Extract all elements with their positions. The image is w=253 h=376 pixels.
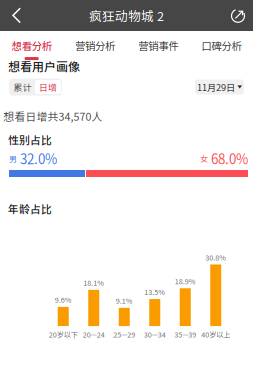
staticText: 68.0% (208, 149, 248, 168)
staticText: 想看分析 (12, 38, 52, 53)
staticText: 口碑分析 (201, 38, 241, 53)
staticText: 30—34 (144, 329, 166, 339)
staticText: 40岁以上 (201, 329, 230, 339)
staticText: 想看用户画像 (8, 57, 80, 75)
staticText: 疯狂动物城 2 (89, 6, 164, 25)
staticText: 18.9% (175, 276, 196, 286)
staticText: 20岁以下 (49, 329, 78, 339)
staticText: 年龄占比 (8, 201, 52, 216)
button[interactable]: 口碑分析 (190, 31, 253, 59)
button[interactable]: Back (6, 5, 28, 26)
staticText: 32.0% (17, 149, 57, 168)
staticText: 11月29日 (197, 80, 235, 94)
staticText: 13.5% (144, 287, 165, 297)
staticText: 营销分析 (75, 38, 115, 53)
staticText: 18.1% (83, 277, 104, 288)
staticText: 35—39 (174, 329, 196, 339)
staticText: 9.1% (116, 295, 133, 306)
staticText: 累计 (13, 81, 31, 93)
staticText: 30.8% (205, 252, 226, 262)
staticText: 性别占比 (8, 132, 52, 147)
staticText: 男 (9, 153, 17, 164)
staticText: 25—29 (113, 329, 135, 339)
staticText: 9.6% (55, 294, 72, 305)
staticText: 想看日增共34,570人 (3, 108, 102, 124)
button[interactable]: 想看分析 (0, 31, 63, 59)
button[interactable]: 营销分析 (63, 31, 126, 59)
staticText: 日增 (39, 81, 57, 93)
button[interactable]: Share (230, 7, 247, 24)
button[interactable]: 累计 (10, 80, 35, 94)
staticText: 女 (200, 153, 208, 164)
button[interactable]: 日增 (35, 80, 61, 94)
staticText: 20—24 (83, 329, 105, 339)
staticText: 营销事件 (138, 38, 178, 53)
button[interactable]: 营销事件 (126, 31, 190, 59)
button[interactable]: 11月29日 (195, 79, 244, 94)
